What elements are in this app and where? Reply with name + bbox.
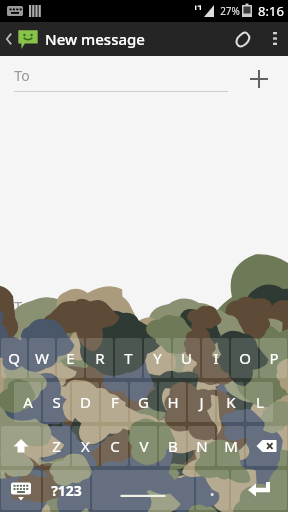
- staticText: A: [23, 392, 33, 412]
- button[interactable]: Shift: [1, 426, 41, 466]
- button[interactable]: Space: [92, 470, 194, 510]
- staticText: New message: [45, 29, 145, 49]
- button[interactable]: N: [188, 426, 215, 466]
- button[interactable]: Send: [242, 291, 280, 329]
- staticText: S: [52, 392, 61, 412]
- staticText: O: [239, 348, 251, 368]
- staticText: I: [213, 348, 219, 368]
- button[interactable]: G: [130, 382, 157, 422]
- button[interactable]: J: [188, 382, 215, 422]
- button[interactable]: Z: [43, 426, 70, 466]
- button[interactable]: D: [72, 382, 99, 422]
- button[interactable]: B: [159, 426, 186, 466]
- staticText: W: [35, 348, 49, 368]
- button[interactable]: R: [86, 338, 113, 378]
- staticText: M: [224, 436, 238, 456]
- staticText: P: [269, 348, 279, 368]
- staticText: D: [80, 392, 91, 412]
- button[interactable]: Back: [0, 22, 147, 56]
- button[interactable]: More options: [262, 22, 288, 56]
- button[interactable]: A: [14, 382, 41, 422]
- staticText: J: [199, 392, 204, 412]
- staticText: N: [196, 436, 208, 456]
- button[interactable]: ?123: [43, 470, 90, 510]
- button[interactable]: Enter: [231, 470, 287, 510]
- staticText: C: [110, 436, 120, 456]
- staticText: 27%: [220, 4, 240, 18]
- button[interactable]: H: [159, 382, 186, 422]
- staticText: H: [167, 392, 179, 412]
- staticText: To: [14, 66, 30, 85]
- button[interactable]: C: [101, 426, 128, 466]
- staticText: V: [139, 436, 149, 456]
- button[interactable]: P: [260, 338, 287, 378]
- button[interactable]: O: [231, 338, 258, 378]
- button[interactable]: Type message: [14, 297, 232, 324]
- button[interactable]: Y: [144, 338, 171, 378]
- button[interactable]: Add recipient: [244, 64, 274, 94]
- button[interactable]: Attach: [224, 22, 262, 56]
- button[interactable]: V: [130, 426, 157, 466]
- button[interactable]: E: [57, 338, 84, 378]
- button[interactable]: Q: [1, 338, 27, 378]
- button[interactable]: L: [246, 382, 273, 422]
- staticText: 8:16: [258, 2, 284, 20]
- button[interactable]: To: [14, 66, 228, 92]
- staticText: B: [168, 436, 178, 456]
- staticText: G: [138, 392, 149, 412]
- button[interactable]: I: [202, 338, 229, 378]
- staticText: Q: [8, 348, 20, 368]
- button[interactable]: U: [173, 338, 200, 378]
- staticText: U: [181, 348, 192, 368]
- button[interactable]: F: [101, 382, 128, 422]
- button[interactable]: Backspace: [246, 426, 287, 466]
- staticText: Type message: [14, 297, 108, 316]
- staticText: L: [256, 392, 264, 412]
- button[interactable]: Switch keyboard: [1, 470, 41, 510]
- staticText: Z: [52, 436, 61, 456]
- button[interactable]: S: [43, 382, 70, 422]
- button[interactable]: T: [115, 338, 142, 378]
- button[interactable]: W: [29, 338, 55, 378]
- staticText: Y: [153, 348, 162, 368]
- button[interactable]: Period: [196, 470, 229, 510]
- button[interactable]: K: [217, 382, 244, 422]
- staticText: E: [66, 348, 75, 368]
- staticText: T: [124, 348, 133, 368]
- staticText: K: [226, 392, 236, 412]
- button[interactable]: M: [217, 426, 244, 466]
- staticText: F: [111, 392, 119, 412]
- button[interactable]: X: [72, 426, 99, 466]
- staticText: ?123: [51, 481, 82, 500]
- staticText: X: [81, 436, 90, 456]
- staticText: R: [95, 348, 105, 368]
